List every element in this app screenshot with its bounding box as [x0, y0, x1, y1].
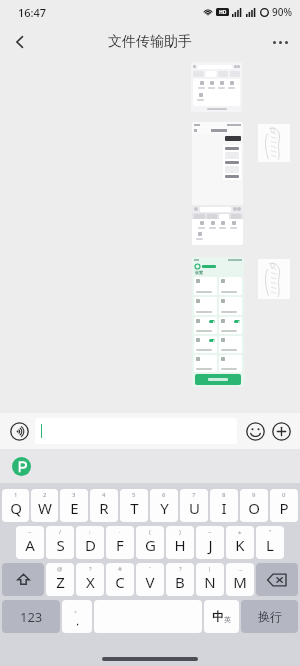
staticText: # [118, 565, 122, 573]
button[interactable]: Input method logo [12, 457, 31, 476]
staticText: J [208, 535, 213, 555]
button[interactable] [35, 418, 237, 444]
button[interactable]: 8 [210, 489, 238, 522]
button[interactable]: 5 [120, 489, 148, 522]
staticText: E [70, 498, 79, 518]
button[interactable]: : [76, 526, 104, 559]
staticText: ~ [28, 528, 32, 536]
button[interactable]: More options [260, 24, 300, 60]
staticText: ， [72, 614, 83, 628]
button[interactable] [195, 374, 241, 385]
button[interactable]: ~ [16, 526, 44, 559]
button[interactable]: ? [166, 563, 194, 596]
staticText: Z [56, 572, 65, 592]
staticText: | [208, 565, 212, 573]
button[interactable]: ) [166, 526, 194, 559]
staticText: U [189, 498, 200, 518]
button[interactable]: # [106, 563, 134, 596]
staticText: 16:47 [18, 5, 47, 20]
staticText: " [269, 528, 272, 536]
button[interactable]: 中 [204, 600, 239, 633]
staticText: ? [89, 565, 92, 573]
button[interactable]: 9 [240, 489, 268, 522]
button[interactable]: ´ [136, 563, 164, 596]
staticText: 3 [72, 491, 76, 499]
staticText: D [85, 535, 96, 555]
staticText: / [59, 528, 62, 536]
staticText: 中 [212, 609, 224, 624]
staticText: S [56, 535, 65, 555]
staticText: K [235, 535, 245, 555]
button[interactable] [258, 259, 290, 299]
staticText: 英 [224, 615, 231, 624]
button[interactable] [191, 62, 242, 112]
button[interactable]: 换行 [241, 600, 298, 633]
staticText: 设置 [195, 270, 203, 275]
button[interactable]: 1 [2, 489, 29, 522]
staticText: A [25, 535, 35, 555]
staticText: 7 [192, 491, 196, 499]
staticText: 6 [162, 491, 166, 499]
staticText: H [174, 535, 186, 555]
button[interactable]: 0 [270, 489, 298, 522]
staticText: 9 [252, 491, 256, 499]
button[interactable]: | [196, 563, 224, 596]
button[interactable]: Backspace [256, 563, 298, 596]
button[interactable]: 3 [60, 489, 88, 522]
staticText: I [221, 498, 227, 518]
button[interactable]: Shift [2, 563, 44, 596]
staticText: 0 [282, 491, 286, 499]
staticText: G [145, 535, 156, 555]
staticText: ( [149, 528, 151, 536]
staticText: B [175, 572, 185, 592]
staticText: 90% [272, 5, 292, 19]
button[interactable]: Back [0, 24, 40, 60]
staticText: 1 [14, 491, 18, 499]
button[interactable]: Emoji [243, 419, 267, 443]
button[interactable]: / [46, 526, 74, 559]
staticText: 文件传输助手 [108, 33, 192, 51]
staticText: N [204, 572, 216, 592]
staticText: X [86, 572, 95, 592]
button[interactable]: ( [136, 526, 164, 559]
staticText: O [248, 498, 260, 518]
button[interactable]: ~ [196, 526, 224, 559]
staticText: ? [179, 565, 182, 573]
staticText: M [233, 572, 247, 592]
button[interactable]: 2 [31, 489, 58, 522]
button[interactable]: " [256, 526, 284, 559]
button[interactable]: · [106, 526, 134, 559]
button[interactable]: … [226, 563, 254, 596]
button[interactable]: 。 [62, 600, 92, 633]
staticText: P [279, 498, 289, 518]
staticText: Q [10, 498, 22, 518]
staticText: ± [238, 528, 242, 536]
staticText: 2 [43, 491, 47, 499]
staticText: R [99, 498, 109, 518]
button[interactable]: 6 [150, 489, 178, 522]
button[interactable] [258, 124, 290, 162]
staticText: W [38, 498, 52, 518]
staticText: Y [160, 498, 169, 518]
staticText: @ [57, 565, 63, 573]
staticText: V [145, 572, 155, 592]
button[interactable] [192, 122, 243, 245]
button[interactable]: ? [76, 563, 104, 596]
button[interactable]: Voice input [7, 419, 31, 443]
button[interactable]: More functions [269, 419, 293, 443]
button[interactable]: ± [226, 526, 254, 559]
button[interactable]: 123 [2, 600, 60, 633]
staticText: 换行 [258, 609, 282, 624]
button[interactable]: 设置 [192, 257, 244, 387]
staticText: C [115, 572, 125, 592]
staticText: ´ [149, 565, 151, 573]
staticText: T [130, 498, 139, 518]
button[interactable]: 4 [90, 489, 118, 522]
staticText: ) [179, 528, 181, 536]
staticText: 123 [20, 608, 43, 626]
button[interactable]: 7 [180, 489, 208, 522]
staticText: 。 [74, 605, 81, 614]
button[interactable]: @ [46, 563, 74, 596]
staticText: ~ [208, 528, 212, 536]
